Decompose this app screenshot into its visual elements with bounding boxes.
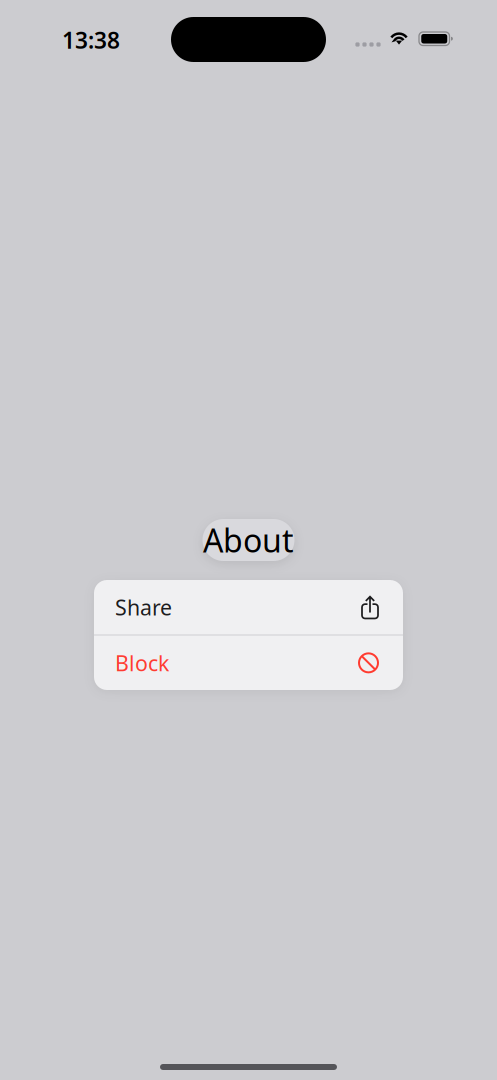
button[interactable]: About xyxy=(202,519,294,561)
staticText: 13:38 xyxy=(62,25,120,55)
button[interactable]: Block xyxy=(94,636,403,690)
button[interactable]: Share xyxy=(94,580,403,634)
staticText: Block xyxy=(115,649,169,677)
staticText: About xyxy=(203,519,294,561)
staticText: Share xyxy=(115,593,172,621)
